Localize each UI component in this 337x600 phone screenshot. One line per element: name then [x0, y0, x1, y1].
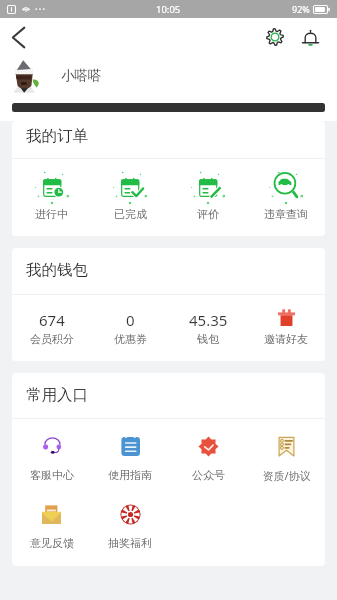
staticText: 0 [126, 310, 135, 330]
button[interactable]: Back [2, 21, 34, 53]
staticText: 客服中心 [30, 468, 74, 482]
button[interactable]: 使用指南 [91, 419, 169, 482]
button[interactable]: Settings [261, 23, 289, 51]
button[interactable]: 评价 [169, 159, 247, 221]
staticText: 钱包 [197, 332, 219, 346]
button[interactable]: 0 [91, 295, 169, 346]
staticText: 公众号 [192, 468, 225, 482]
button[interactable]: 公众号 [169, 419, 247, 482]
button[interactable]: 45.35 [169, 295, 247, 346]
staticText: 已完成 [114, 207, 147, 221]
staticText: 资质/协议 [262, 468, 311, 483]
staticText: 10:05 [156, 3, 181, 16]
button[interactable]: Notifications [296, 23, 324, 51]
staticText: 使用指南 [108, 468, 152, 482]
staticText: 邀请好友 [264, 332, 308, 346]
staticText: 我的订单 [26, 126, 88, 146]
button[interactable]: 已完成 [91, 159, 169, 221]
staticText: 常用入口 [26, 385, 88, 405]
button[interactable]: 进行中 [12, 159, 91, 221]
button[interactable]: Profile avatar [7, 59, 40, 92]
staticText: 小嗒嗒 [61, 67, 102, 84]
staticText: 进行中 [35, 207, 68, 221]
staticText: 意见反馈 [30, 536, 74, 550]
staticText: 违章查询 [264, 207, 308, 221]
button[interactable]: 违章查询 [247, 159, 325, 221]
staticText: 我的钱包 [26, 260, 88, 280]
button[interactable]: 客服中心 [12, 419, 91, 482]
button[interactable]: 意见反馈 [12, 487, 91, 550]
staticText: 674 [39, 310, 65, 330]
button[interactable]: 资质/协议 [247, 419, 325, 483]
staticText: 优惠券 [114, 332, 147, 346]
staticText: 会员积分 [30, 332, 74, 346]
button[interactable]: 邀请好友 [247, 295, 325, 346]
button[interactable]: 674 [12, 295, 91, 346]
staticText: 45.35 [189, 310, 228, 330]
staticText: 评价 [197, 207, 219, 221]
button[interactable]: 抽奖福利 [91, 487, 169, 550]
staticText: 92% [292, 3, 310, 15]
staticText: 抽奖福利 [108, 536, 152, 550]
